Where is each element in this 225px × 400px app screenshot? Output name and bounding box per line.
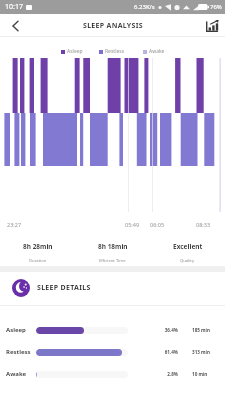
staticText: SLEEP ANALYSIS xyxy=(83,21,143,31)
staticText: Excellent xyxy=(173,242,203,251)
button[interactable]: Awake xyxy=(0,363,225,385)
staticText: 05:49 xyxy=(125,221,140,228)
staticText: 185 min xyxy=(192,327,210,333)
staticText: 2.8% xyxy=(164,371,178,377)
staticText: 313 min xyxy=(192,349,210,355)
staticText: SLEEP DETAILS xyxy=(37,283,91,293)
staticText: Asleep xyxy=(67,48,83,55)
staticText: 6.23K/s xyxy=(134,3,155,11)
staticText: 10 min xyxy=(192,371,208,377)
staticText: 06:05 xyxy=(150,221,165,228)
staticText: 76% xyxy=(210,3,222,11)
staticText: Efficient Time xyxy=(99,258,126,264)
staticText: 8h 28min xyxy=(23,242,53,251)
button[interactable]: Statistics xyxy=(199,14,225,37)
staticText: Awake xyxy=(149,48,165,55)
staticText: 23:27 xyxy=(7,221,22,228)
staticText: 08:33 xyxy=(196,221,211,228)
staticText: 8h 18min xyxy=(98,242,128,251)
button[interactable]: Restless xyxy=(0,341,225,363)
staticText: Restless xyxy=(6,348,31,356)
staticText: Quality xyxy=(180,258,195,264)
staticText: Duration xyxy=(29,258,47,264)
staticText: Restless xyxy=(105,48,125,55)
staticText: 10:17 xyxy=(5,2,23,12)
staticText: Asleep xyxy=(6,326,26,334)
button[interactable]: Asleep xyxy=(0,319,225,341)
button[interactable]: Back xyxy=(0,14,30,37)
staticText: Awake xyxy=(6,370,27,378)
staticText: 61.4% xyxy=(164,349,178,355)
staticText: 36.4% xyxy=(164,327,178,333)
